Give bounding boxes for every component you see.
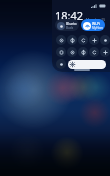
button[interactable]: Quick setting 8 — [78, 47, 88, 57]
staticText: Wi-Fi — [92, 21, 100, 26]
staticText: MyHome5G — [92, 26, 104, 30]
button[interactable]: Quick setting 7 — [67, 47, 77, 57]
button[interactable]: Quick setting 6 — [56, 47, 66, 57]
button[interactable]: Quick setting 4 — [89, 35, 99, 45]
staticText: 18:42 — [55, 8, 84, 23]
button[interactable]: Quick setting 5 — [100, 35, 110, 45]
button[interactable]: Quick setting 10 — [100, 47, 110, 57]
staticText: Buds Pro — [66, 26, 78, 30]
button[interactable]: Quick setting 11 — [56, 59, 66, 69]
button[interactable]: Expand shade — [74, 69, 90, 71]
button[interactable]: Quick setting 1 — [56, 35, 66, 45]
button[interactable]: Quick setting 3 — [78, 35, 88, 45]
button[interactable]: Quick setting 2 — [67, 35, 77, 45]
button[interactable]: Wi-Fi — [81, 19, 105, 31]
staticText: Mon, Jan 15 — [86, 17, 106, 22]
button[interactable]: Bluetooth — [55, 19, 79, 31]
button[interactable]: Brightness — [68, 60, 106, 69]
staticText: Bluetooth — [66, 21, 78, 26]
button[interactable]: Quick setting 9 — [89, 47, 99, 57]
